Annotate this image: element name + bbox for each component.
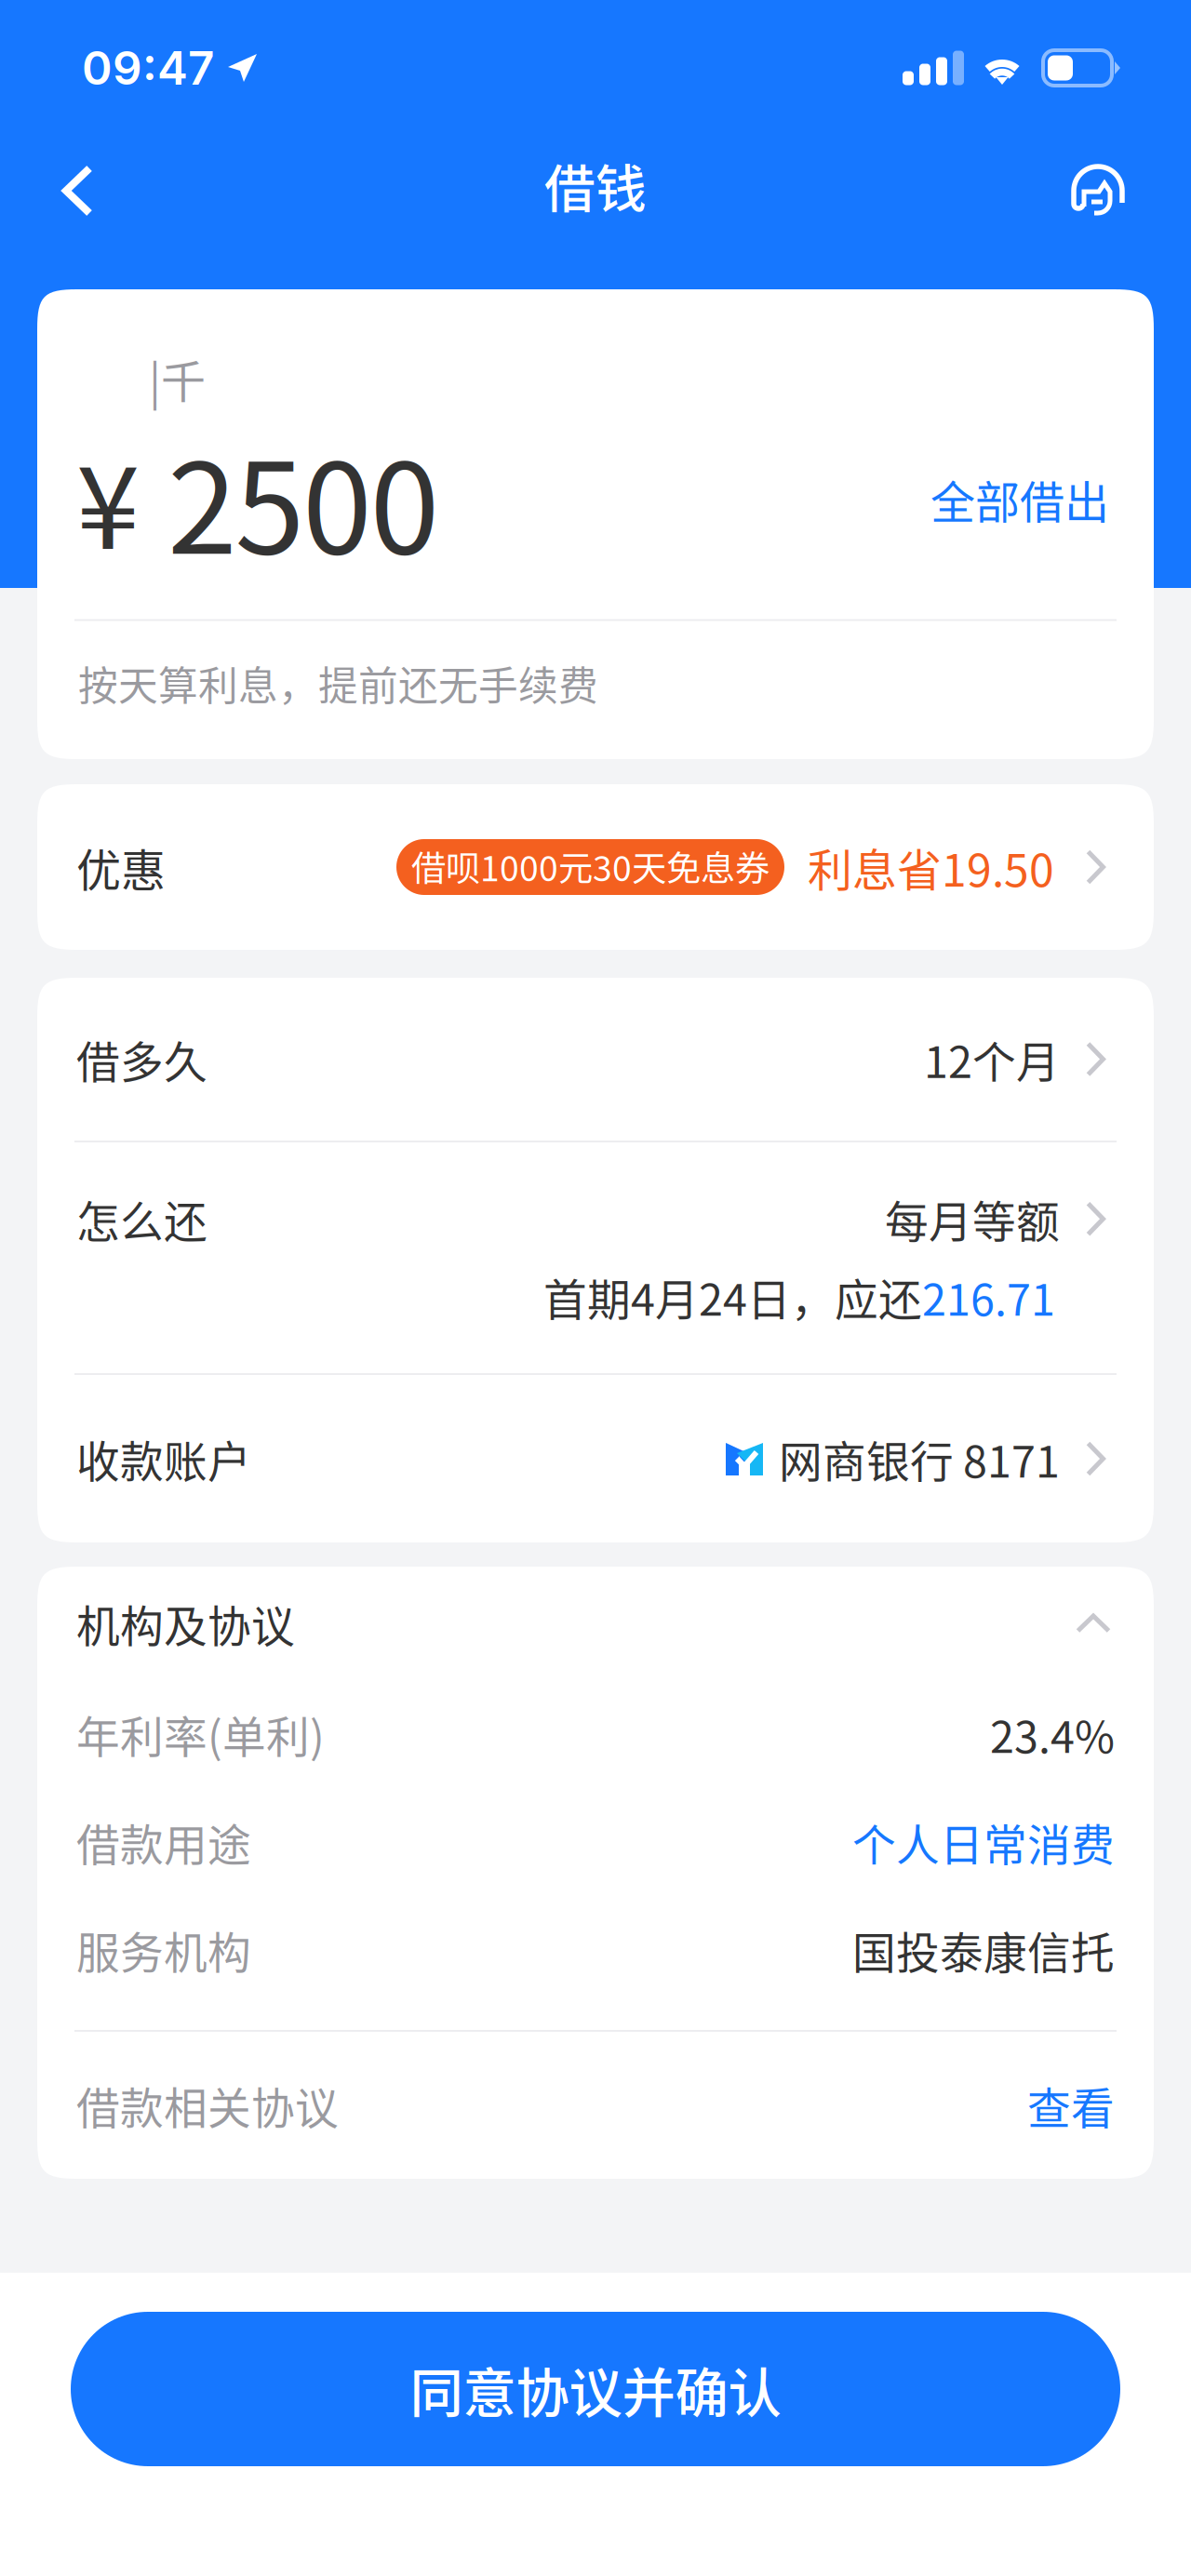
staticText: 优惠	[76, 835, 166, 899]
staticText: 216.71	[922, 1265, 1055, 1328]
staticText: 怎么还	[76, 1187, 207, 1250]
staticText: 个人日常消费	[852, 1811, 1115, 1873]
staticText: 服务机构	[76, 1918, 251, 1981]
staticText: 收款账户	[76, 1427, 251, 1490]
staticText: 2500	[167, 408, 440, 590]
button[interactable]: 返回	[33, 135, 122, 247]
staticText: 按天算利息，提前还无手续费	[78, 654, 598, 712]
button[interactable]: 借款相关协议	[37, 2032, 1154, 2179]
staticText: 全部借出	[930, 467, 1109, 531]
staticText: 09:47	[82, 40, 214, 96]
staticText: 网商银行 8171	[779, 1427, 1060, 1490]
staticText: 机构及协议	[76, 1592, 295, 1655]
button[interactable]: 全部借出	[908, 448, 1113, 550]
staticText: 借款相关协议	[76, 2074, 339, 2137]
staticText: ¥	[76, 416, 140, 582]
staticText: 借钱	[544, 148, 647, 222]
staticText: 借多久	[76, 1028, 207, 1091]
staticText: 首期4月24日，应还	[543, 1265, 922, 1328]
staticText: 12个月	[924, 1028, 1060, 1091]
staticText: 利息省19.50	[808, 835, 1054, 899]
staticText: 国投泰康信托	[852, 1918, 1115, 1981]
button[interactable]: 怎么还	[37, 1142, 1154, 1373]
staticText: 23.4%	[990, 1703, 1115, 1766]
button[interactable]: 机构及协议	[37, 1567, 1154, 1680]
staticText: 借款用途	[76, 1811, 251, 1873]
staticText: |千	[149, 346, 206, 411]
staticText: 同意协议并确认	[410, 2350, 781, 2428]
button[interactable]: 在线客服	[1053, 135, 1143, 247]
button[interactable]: 同意协议并确认	[71, 2312, 1120, 2466]
staticText: 查看	[1027, 2074, 1115, 2137]
staticText: 每月等额	[885, 1187, 1060, 1250]
staticText: 年利率(单利)	[76, 1703, 325, 1766]
button[interactable]: 优惠	[37, 784, 1154, 950]
button[interactable]: 收款账户	[37, 1375, 1154, 1542]
button[interactable]: 借多久	[37, 978, 1154, 1141]
staticText: 借呗1000元30天免息券	[411, 841, 769, 891]
